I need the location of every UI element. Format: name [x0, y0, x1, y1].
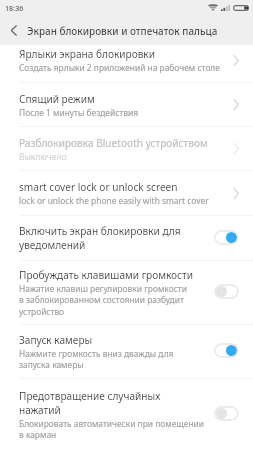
button[interactable]: Запуск камеры [0, 325, 253, 378]
staticText: После 1 минуты бездействия [19, 107, 138, 118]
staticText: Разблокировка Bluetooth устройством [19, 136, 208, 150]
button[interactable]: Включить экран блокировки для уведомлени… [0, 216, 253, 260]
staticText: Выключено [19, 151, 67, 162]
staticText: Создать ярлыки 2 приложений на рабочем с… [19, 62, 220, 73]
staticText: Блокировать автоматически при помещении … [19, 418, 205, 441]
staticText: Экран блокировки и отпечаток пальца [27, 24, 218, 37]
staticText: 18:36 [5, 3, 24, 13]
staticText: smart cover lock or unlock screen [19, 180, 178, 194]
staticText: Спящий режим [19, 92, 95, 106]
button[interactable]: Предотвращение случайных нажатий [0, 379, 253, 450]
staticText: Запуск камеры [19, 333, 93, 347]
button[interactable]: smart cover lock or unlock screen [0, 171, 253, 215]
staticText: Пробуждать клавишами громкости [19, 268, 194, 282]
button[interactable]: Выключено [214, 284, 239, 299]
staticText: lock or unlock the phone easily with sma… [19, 195, 209, 206]
staticText: Включить экран блокировки для уведомлени… [19, 224, 181, 252]
button[interactable]: Включено [214, 230, 239, 245]
staticText: Нажмите громкость вниз дважды для запуск… [19, 348, 174, 371]
button[interactable]: Разблокировка Bluetooth устройством [0, 127, 253, 170]
staticText: Нажатие клавиш регулировки громкости в з… [19, 283, 187, 318]
staticText: Ярлыки экрана блокировки [19, 47, 155, 61]
button[interactable]: Назад [0, 16, 27, 45]
button[interactable]: Пробуждать клавишами громкости [0, 261, 253, 324]
button[interactable]: Спящий режим [0, 83, 253, 126]
button[interactable]: Выключено [214, 406, 239, 421]
staticText: Предотвращение случайных нажатий [19, 389, 161, 417]
button[interactable]: Включено [214, 343, 239, 358]
button[interactable]: Ярлыки экрана блокировки [0, 38, 253, 82]
